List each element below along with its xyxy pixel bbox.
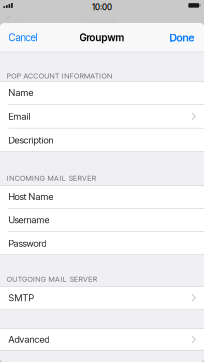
button[interactable]: Name: [0, 81, 204, 105]
staticText: Done: [169, 31, 194, 44]
staticText: Accounts: [86, 16, 117, 24]
button[interactable]: Cancel: [0, 26, 46, 50]
staticText: Mail: [13, 16, 25, 24]
button[interactable]: Host Name: [0, 185, 204, 209]
button[interactable]: Email: [0, 105, 204, 128]
button[interactable]: Description: [0, 128, 204, 152]
staticText: Groupwm: [79, 32, 124, 44]
staticText: OUTGOING MAIL SERVER: [7, 275, 97, 283]
staticText: Advanced: [8, 334, 49, 345]
staticText: Password: [8, 238, 46, 249]
staticText: Email: [8, 111, 30, 122]
staticText: Cancel: [8, 32, 37, 44]
staticText: SMTP: [8, 292, 33, 303]
staticText: Host Name: [8, 191, 53, 202]
staticText: INCOMING MAIL SERVER: [7, 174, 96, 183]
staticText: Username: [8, 214, 49, 226]
button[interactable]: Advanced: [0, 328, 204, 350]
staticText: 10:00: [92, 3, 112, 12]
staticText: POP ACCOUNT INFORMATION: [7, 71, 112, 80]
button[interactable]: SMTP: [0, 286, 204, 309]
staticText: Description: [8, 135, 53, 146]
button[interactable]: Password: [0, 232, 204, 255]
button[interactable]: Done: [160, 25, 204, 50]
button[interactable]: Username: [0, 209, 204, 232]
staticText: Name: [8, 87, 33, 98]
